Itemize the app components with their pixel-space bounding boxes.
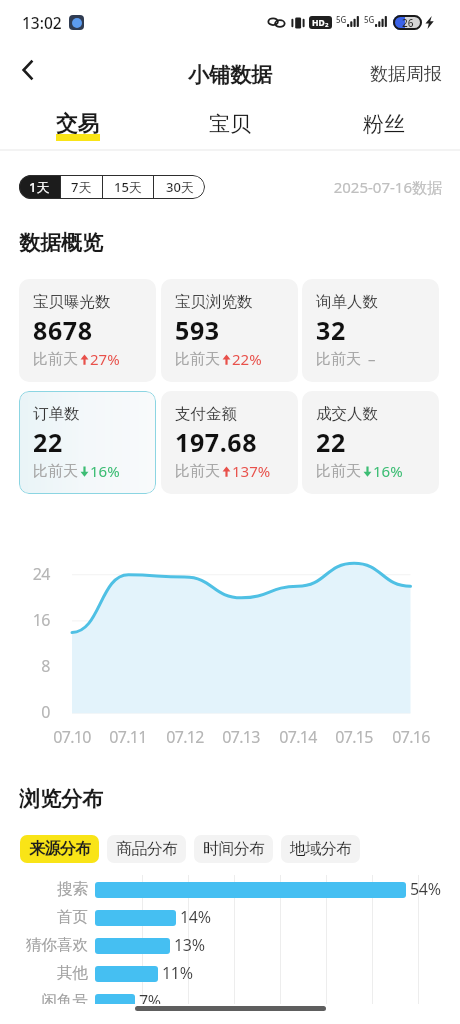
staticText: 比前天 xyxy=(175,350,220,369)
staticText: 22% xyxy=(232,349,262,369)
staticText: 商品分布 xyxy=(116,839,178,859)
staticText: 24 xyxy=(10,563,50,585)
staticText: 比前天 xyxy=(316,350,361,369)
staticText: 粉丝 xyxy=(363,111,405,137)
staticText: 07.13 xyxy=(215,726,267,748)
staticText: 5G xyxy=(336,14,347,25)
button[interactable]: 数据周报 xyxy=(360,58,449,91)
staticText: 8 xyxy=(10,655,50,677)
button[interactable]: 宝贝曝光数 xyxy=(19,279,156,382)
button[interactable]: 成交人数 xyxy=(302,391,439,494)
button[interactable]: 订单数 xyxy=(19,391,156,494)
button[interactable]: 15天 xyxy=(103,175,153,199)
button[interactable]: 7天 xyxy=(61,175,102,199)
staticText: 0 xyxy=(10,701,50,723)
staticText: 15天 xyxy=(114,178,142,196)
staticText: 支付金额 xyxy=(175,404,237,424)
button[interactable]: 宝贝 xyxy=(153,100,306,147)
staticText: 宝贝 xyxy=(209,111,251,137)
staticText: 07.14 xyxy=(272,726,324,748)
staticText: 比前天 xyxy=(33,462,78,481)
staticText: 7天 xyxy=(71,178,92,196)
button[interactable]: 商品分布 xyxy=(107,835,186,863)
staticText: 来源分布 xyxy=(29,839,91,859)
staticText: 宝贝浏览数 xyxy=(175,292,253,312)
staticText: 11% xyxy=(162,962,193,984)
staticText: 14% xyxy=(180,906,211,928)
button[interactable]: 支付金额 xyxy=(161,391,298,494)
staticText: 比前天 xyxy=(316,462,361,481)
staticText: 地域分布 xyxy=(290,839,352,859)
button[interactable]: 来源分布 xyxy=(20,835,99,863)
staticText: 猜你喜欢 xyxy=(10,935,88,955)
staticText: 搜索 xyxy=(10,879,88,899)
staticText: 5G xyxy=(364,14,375,25)
staticText: 22 xyxy=(316,425,346,459)
staticText: 593 xyxy=(175,313,220,347)
button[interactable]: 地域分布 xyxy=(281,835,360,863)
button[interactable]: 1天 xyxy=(19,175,60,199)
staticText: 数据周报 xyxy=(370,63,442,86)
button[interactable]: Back xyxy=(8,50,48,90)
staticText: 2025-07-16数据 xyxy=(300,177,442,197)
staticText: 宝贝曝光数 xyxy=(33,292,111,312)
staticText: HD xyxy=(312,17,325,29)
button[interactable]: 30天 xyxy=(154,175,205,199)
staticText: 成交人数 xyxy=(316,404,378,424)
staticText: 137% xyxy=(232,461,271,481)
staticText: 13% xyxy=(174,934,205,956)
staticText: 询单人数 xyxy=(316,292,378,312)
button[interactable]: 粉丝 xyxy=(307,100,460,147)
staticText: 数据概览 xyxy=(19,230,103,256)
staticText: 26 xyxy=(402,16,414,30)
staticText: 小铺数据 xyxy=(0,62,460,88)
staticText: 闲鱼号 xyxy=(10,991,88,1011)
staticText: 其他 xyxy=(10,963,88,983)
staticText: 07.11 xyxy=(102,726,154,748)
staticText: 2 xyxy=(325,21,329,29)
staticText: 07.16 xyxy=(385,726,437,748)
staticText: 浏览分布 xyxy=(19,786,103,812)
button[interactable]: 时间分布 xyxy=(194,835,273,863)
button[interactable]: 交易 xyxy=(0,100,153,147)
staticText: 197.68 xyxy=(175,425,258,459)
button[interactable]: 宝贝浏览数 xyxy=(161,279,298,382)
staticText: 27% xyxy=(90,349,120,369)
staticText: 16% xyxy=(90,461,120,481)
staticText: 32 xyxy=(316,313,346,347)
staticText: 07.10 xyxy=(46,726,98,748)
staticText: 时间分布 xyxy=(203,839,265,859)
staticText: 13:02 xyxy=(22,12,62,33)
staticText: 7% xyxy=(139,990,161,1012)
button[interactable]: 询单人数 xyxy=(302,279,439,382)
staticText: 16 xyxy=(10,609,50,631)
staticText: 比前天 xyxy=(175,462,220,481)
staticText: 22 xyxy=(33,425,63,459)
staticText: 8678 xyxy=(33,313,93,347)
staticText: 订单数 xyxy=(33,404,80,424)
staticText: 30天 xyxy=(166,178,194,196)
staticText: 07.15 xyxy=(328,726,380,748)
staticText: 交易 xyxy=(56,110,99,137)
staticText: 1天 xyxy=(29,178,50,196)
staticText: 54% xyxy=(410,878,441,900)
staticText: 16% xyxy=(373,461,403,481)
staticText: – xyxy=(368,349,376,369)
staticText: 比前天 xyxy=(33,350,78,369)
staticText: 首页 xyxy=(10,907,88,927)
staticText: 07.12 xyxy=(159,726,211,748)
